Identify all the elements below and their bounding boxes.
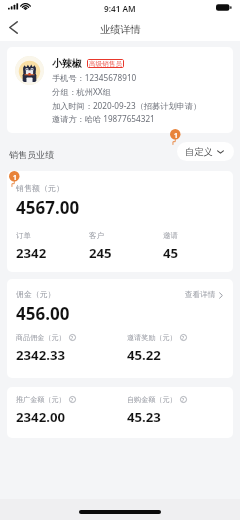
staticText: 1 bbox=[13, 173, 17, 182]
staticText: 客户 bbox=[89, 231, 104, 240]
button[interactable]: Help bbox=[69, 396, 76, 403]
staticText: 邀请方：哈哈 19877654321 bbox=[52, 113, 155, 124]
staticText: 订单 bbox=[16, 231, 31, 240]
staticText: 手机号：12345678910 bbox=[52, 72, 137, 83]
button[interactable]: Help bbox=[180, 396, 187, 403]
staticText: 加入时间：2020-09-23（招募计划申请） bbox=[52, 100, 202, 111]
staticText: 45.22 bbox=[127, 346, 161, 364]
staticText: 推广金额（元） bbox=[16, 395, 66, 404]
staticText: 业绩详情 bbox=[100, 23, 141, 36]
staticText: 商品佣金（元） bbox=[16, 333, 66, 342]
button[interactable]: Back bbox=[2, 15, 24, 39]
button[interactable]: Help bbox=[69, 334, 76, 341]
staticText: 查看详情 bbox=[185, 290, 216, 300]
staticText: 邀请奖励（元） bbox=[127, 333, 177, 342]
staticText: 45.23 bbox=[127, 408, 161, 426]
staticText: 2342 bbox=[16, 244, 47, 262]
staticText: 9:41 AM bbox=[104, 3, 136, 14]
button[interactable]: 小辣椒 bbox=[7, 47, 233, 133]
staticText: 1 bbox=[174, 131, 178, 140]
staticText: 245 bbox=[89, 244, 112, 262]
button[interactable]: 自定义 bbox=[177, 142, 234, 161]
staticText: 高级销售员 bbox=[89, 60, 122, 68]
staticText: 456.00 bbox=[16, 302, 70, 325]
staticText: 2342.00 bbox=[16, 408, 65, 426]
staticText: 佣金（元） bbox=[16, 289, 56, 299]
staticText: 小辣椒 bbox=[52, 57, 82, 70]
staticText: 销售额（元） bbox=[16, 183, 64, 193]
staticText: 4567.00 bbox=[16, 196, 80, 219]
button[interactable]: 查看详情 bbox=[185, 288, 223, 302]
staticText: 自定义 bbox=[185, 146, 213, 158]
staticText: ? bbox=[182, 397, 185, 403]
staticText: 2342.33 bbox=[16, 346, 65, 364]
staticText: 分组：杭州XX组 bbox=[52, 86, 111, 97]
staticText: ? bbox=[71, 397, 74, 403]
staticText: ? bbox=[71, 335, 74, 341]
staticText: ? bbox=[182, 335, 185, 341]
staticText: 销售员业绩 bbox=[9, 149, 54, 160]
staticText: 自购金额（元） bbox=[127, 395, 177, 404]
staticText: 邀请 bbox=[163, 231, 178, 240]
button[interactable]: Help bbox=[180, 334, 187, 341]
staticText: 45 bbox=[163, 244, 179, 262]
